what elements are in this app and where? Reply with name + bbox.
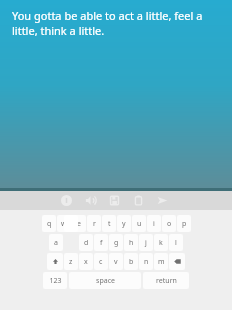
button[interactable]: e xyxy=(72,215,86,232)
staticText: a xyxy=(54,238,58,248)
staticText: p xyxy=(182,219,187,229)
button[interactable]: Volume xyxy=(78,191,102,210)
button[interactable]: You gotta be able to act a little, feel … xyxy=(0,0,232,188)
staticText: r xyxy=(93,219,96,229)
button[interactable]: n xyxy=(139,253,153,270)
button[interactable]: y xyxy=(117,215,131,232)
button[interactable]: u xyxy=(132,215,146,232)
button[interactable]: k xyxy=(154,234,168,251)
button[interactable]: r xyxy=(87,215,101,232)
staticText: k xyxy=(159,238,163,248)
staticText: return xyxy=(156,276,177,286)
button[interactable]: c xyxy=(94,253,108,270)
staticText: t xyxy=(108,219,111,229)
staticText: You gotta be able to act a little, feel … xyxy=(12,8,220,38)
staticText: i xyxy=(153,219,155,229)
button[interactable]: f xyxy=(94,234,108,251)
staticText: f xyxy=(100,238,103,248)
button[interactable]: t xyxy=(102,215,116,232)
button[interactable]: 123 xyxy=(43,272,67,289)
staticText: u xyxy=(137,219,142,229)
staticText: z xyxy=(69,257,73,267)
staticText: o xyxy=(167,219,172,229)
button[interactable]: Save xyxy=(102,191,126,210)
button[interactable]: x xyxy=(79,253,93,270)
button[interactable]: Send xyxy=(150,191,174,210)
button[interactable]: o xyxy=(162,215,176,232)
button[interactable]: g xyxy=(109,234,123,251)
button[interactable]: v xyxy=(109,253,123,270)
button[interactable]: h xyxy=(124,234,138,251)
button[interactable]: b xyxy=(124,253,138,270)
staticText: c xyxy=(99,257,103,267)
button[interactable]: Shift xyxy=(47,253,63,270)
button[interactable]: q xyxy=(42,215,56,232)
button[interactable]: space xyxy=(69,272,141,289)
button[interactable]: m xyxy=(154,253,168,270)
staticText: b xyxy=(129,257,134,267)
button[interactable]: return xyxy=(143,272,189,289)
staticText: space xyxy=(96,276,115,286)
button[interactable]: i xyxy=(147,215,161,232)
staticText: j xyxy=(145,238,147,248)
button[interactable]: d xyxy=(79,234,93,251)
staticText: y xyxy=(122,219,126,229)
staticText: 123 xyxy=(49,276,62,286)
staticText: l xyxy=(175,238,177,248)
button[interactable]: w xyxy=(57,215,71,232)
button[interactable]: Info xyxy=(54,191,78,210)
button[interactable]: Clipboard xyxy=(126,191,150,210)
button[interactable]: a xyxy=(49,234,63,251)
staticText: h xyxy=(129,238,134,248)
button[interactable]: z xyxy=(64,253,78,270)
staticText: q xyxy=(47,219,52,229)
button[interactable]: Backspace xyxy=(169,253,185,270)
staticText: v xyxy=(114,257,118,267)
staticText: x xyxy=(84,257,88,267)
staticText: m xyxy=(158,257,165,267)
staticText: w xyxy=(61,219,67,229)
button[interactable]: j xyxy=(139,234,153,251)
staticText: e xyxy=(77,219,81,229)
staticText: n xyxy=(144,257,149,267)
staticText: g xyxy=(114,238,119,248)
button[interactable]: p xyxy=(177,215,191,232)
staticText: d xyxy=(84,238,89,248)
button[interactable]: l xyxy=(169,234,183,251)
